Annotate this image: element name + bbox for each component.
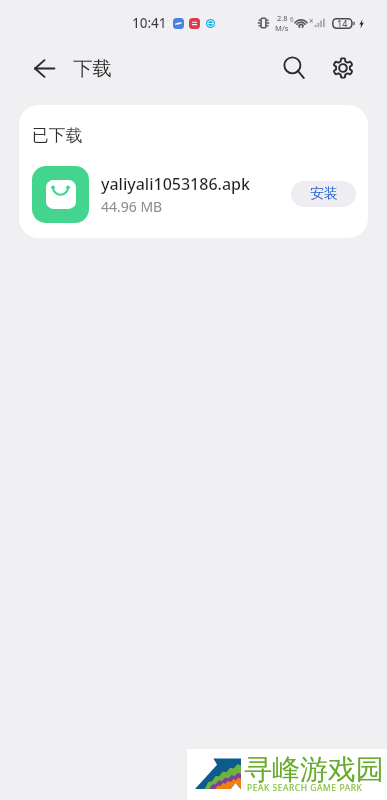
staticText: × (309, 15, 314, 26)
staticText: PEAK SEARCH GAME PARK (247, 782, 363, 794)
button[interactable]: Search (278, 52, 310, 84)
button[interactable]: Back (28, 52, 60, 84)
button[interactable]: 安装 (291, 181, 356, 207)
staticText: 2.8 (277, 13, 288, 23)
staticText: yaliyali1053186.apk (101, 173, 250, 195)
button[interactable]: yaliyali1053186.apk (19, 164, 368, 224)
staticText: 44.96 MB (101, 197, 163, 216)
staticText: 寻峰游戏园 (244, 752, 384, 787)
staticText: M/s (275, 23, 289, 33)
button[interactable]: Settings (327, 52, 359, 84)
staticText: 10:41 (132, 14, 167, 32)
staticText: 14 (337, 17, 348, 29)
staticText: 安装 (310, 185, 338, 203)
staticText: 下载 (73, 56, 112, 81)
staticText: 已下载 (32, 125, 83, 146)
staticText: 6 (290, 15, 294, 24)
